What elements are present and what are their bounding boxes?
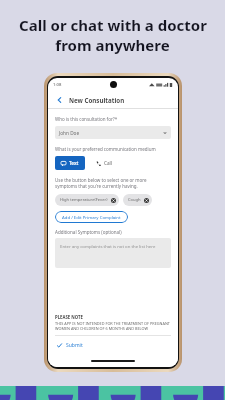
button[interactable]: Add / Edit Primary Complaint [55, 211, 128, 223]
staticText: Call [104, 160, 113, 166]
button[interactable]: Submit [55, 341, 85, 350]
staticText: Cough [128, 197, 141, 203]
staticText: from anywhere [55, 35, 170, 55]
staticText: John Doe [59, 130, 80, 136]
staticText: New Consultation [69, 96, 125, 104]
staticText: Add / Edit Primary Complaint [62, 214, 121, 220]
staticText: High temperature(Fever) [60, 197, 108, 203]
staticText: Additional Symptoms (optional) [55, 229, 122, 235]
button[interactable]: John Doe [55, 126, 171, 139]
button[interactable]: Enter any complaints that is not on the … [55, 238, 171, 268]
staticText: Enter any complaints that is not on the … [60, 243, 156, 249]
staticText: What is your preferred communication med… [55, 146, 156, 152]
staticText: Use the button below to select one or mo… [55, 177, 147, 183]
staticText: Call or chat with a doctor [19, 15, 207, 35]
button[interactable]: Cough [123, 194, 152, 206]
button[interactable]: Text [55, 156, 85, 170]
staticText: Submit [66, 342, 83, 349]
staticText: PLEASE NOTE [55, 314, 83, 320]
staticText: symptoms that you're currently having. [55, 183, 138, 189]
staticText: THIS APP IS NOT INTENDED FOR THE TREATME… [55, 321, 171, 331]
button[interactable]: Back [54, 94, 65, 105]
staticText: Who is this consultation for?* [55, 116, 118, 122]
staticText: Text [69, 160, 79, 166]
button[interactable]: High temperature(Fever) [55, 194, 119, 206]
button[interactable]: Call [90, 156, 119, 170]
staticText: 1:08 [53, 82, 62, 88]
